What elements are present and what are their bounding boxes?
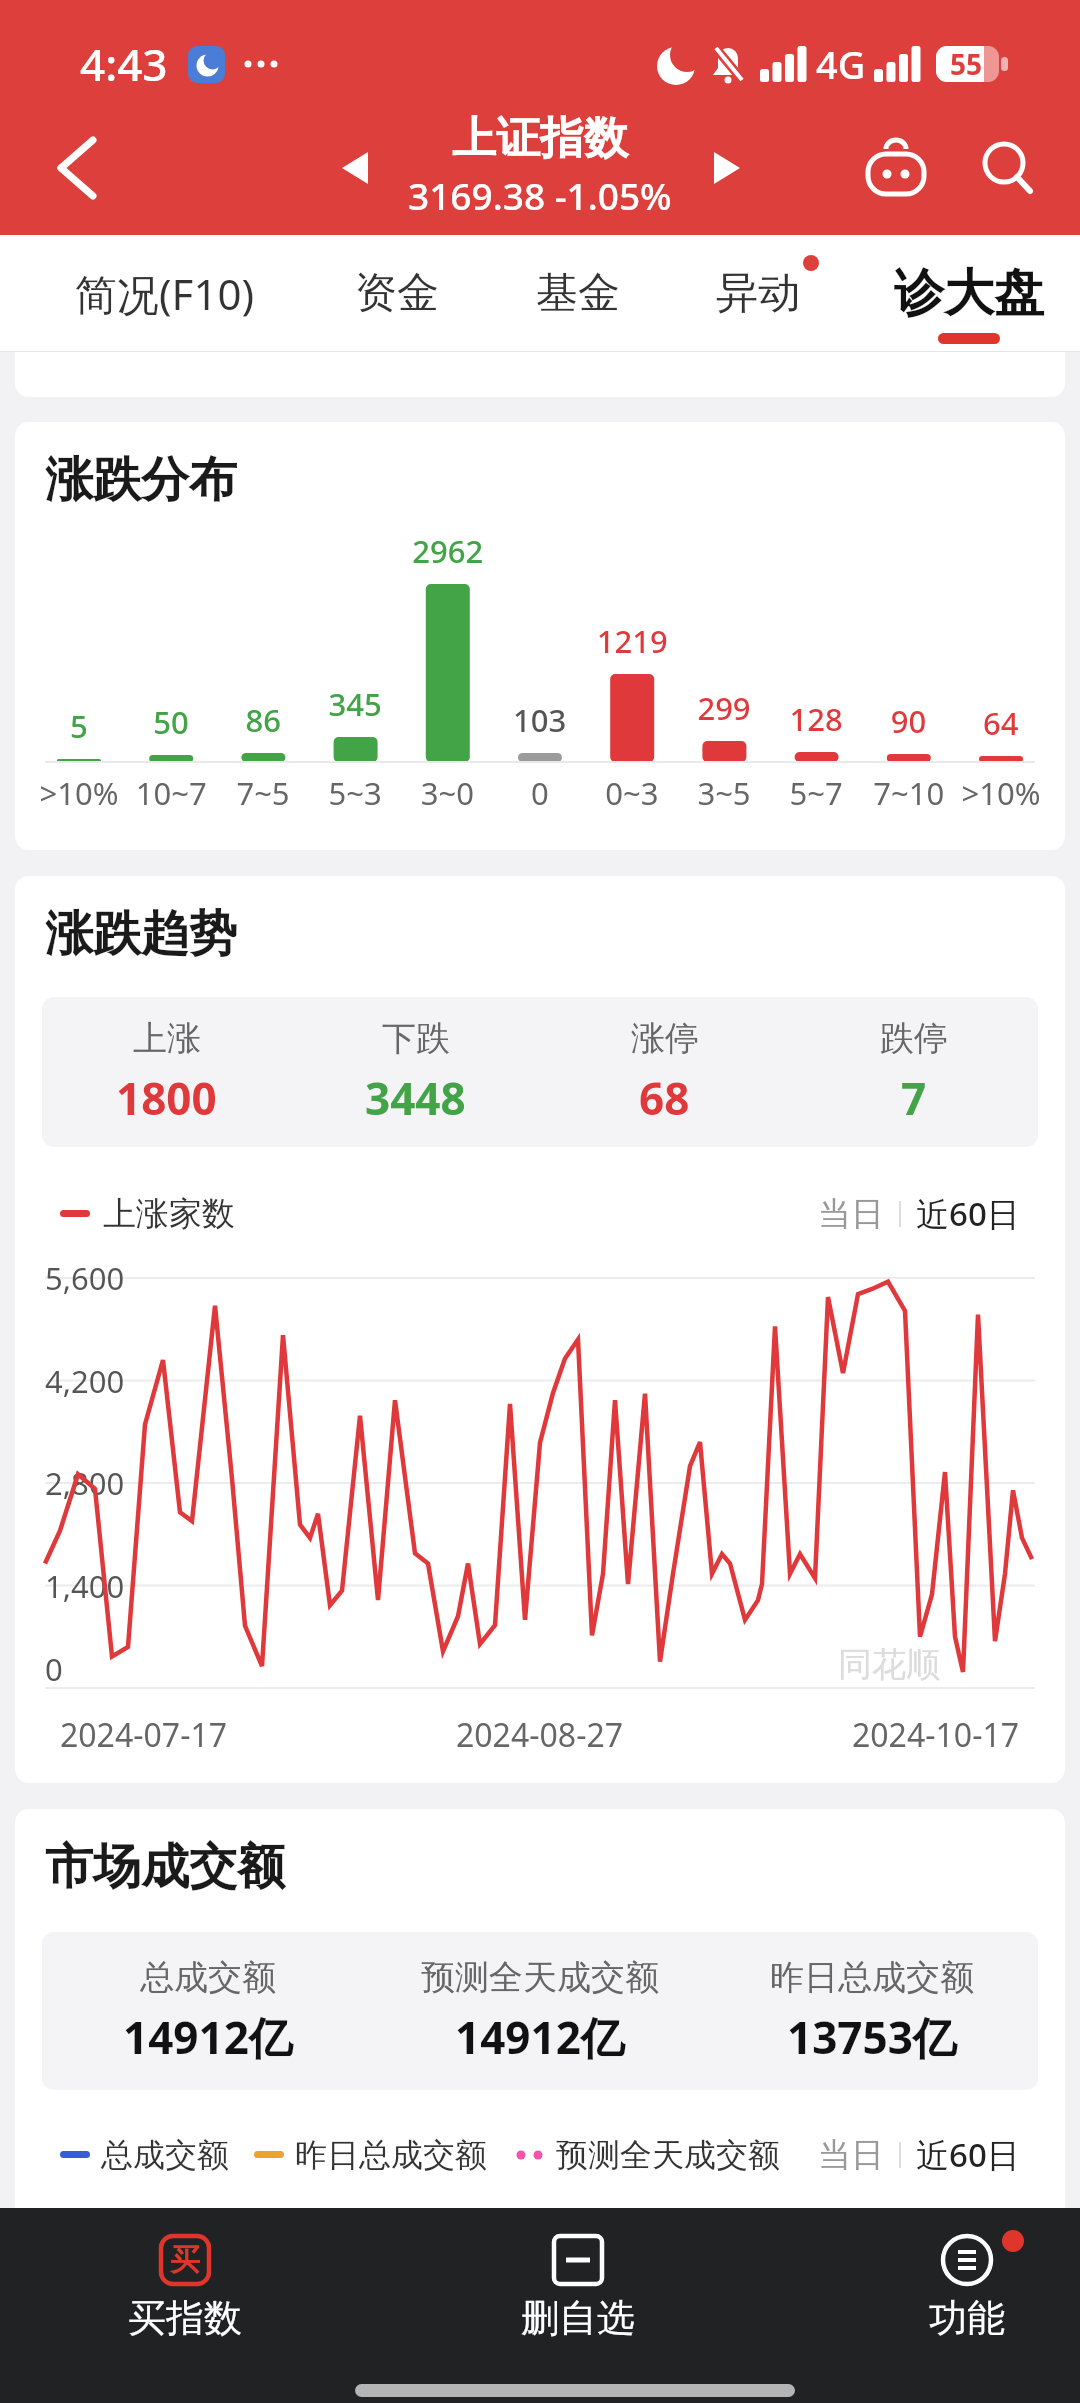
- button[interactable]: 近60日: [916, 1191, 1020, 1236]
- button[interactable]: [860, 132, 932, 204]
- button[interactable]: [714, 152, 740, 184]
- button[interactable]: 诊大盘: [894, 262, 1044, 325]
- staticText: 删自选: [521, 2294, 635, 2342]
- staticText: 涨停: [631, 1017, 699, 1060]
- staticText: 涨跌分布: [45, 450, 237, 510]
- staticText: 基金: [536, 267, 620, 320]
- button[interactable]: [42, 133, 112, 203]
- staticText: 14912亿: [123, 2007, 293, 2067]
- staticText: 7: [901, 1068, 927, 1128]
- staticText: 13753亿: [787, 2007, 957, 2067]
- staticText: 下跌: [382, 1017, 450, 1060]
- staticText: 3448: [365, 1068, 466, 1128]
- staticText: 近60日: [916, 1191, 1020, 1236]
- staticText: 资金: [355, 267, 439, 320]
- button[interactable]: 功能: [897, 2234, 1037, 2342]
- staticText: 2024-10-17: [852, 1713, 1020, 1757]
- button[interactable]: 简况(F10): [75, 265, 255, 322]
- staticText: 4:43: [80, 34, 168, 94]
- staticText: 异动: [716, 267, 800, 320]
- staticText: 1800: [116, 1068, 217, 1128]
- staticText: 功能: [929, 2294, 1005, 2342]
- staticText: 市场成交额: [45, 1837, 285, 1897]
- staticText: 近60日: [916, 2132, 1020, 2177]
- button[interactable]: 删自选: [508, 2234, 648, 2342]
- staticText: 3169.38 -1.05%: [408, 170, 672, 220]
- staticText: 预测全天成交额: [556, 2135, 780, 2175]
- staticText: 昨日总成交额: [295, 2135, 487, 2175]
- button[interactable]: [342, 152, 368, 184]
- staticText: 2024-07-17: [60, 1713, 228, 1757]
- staticText: 2024-08-27: [456, 1713, 624, 1757]
- button[interactable]: 异动: [716, 267, 800, 320]
- staticText: 总成交额: [140, 1956, 276, 1999]
- button[interactable]: 资金: [355, 267, 439, 320]
- staticText: 买指数: [128, 2294, 242, 2342]
- staticText: 昨日总成交额: [770, 1956, 974, 1999]
- staticText: 55: [950, 45, 983, 83]
- staticText: 涨跌趋势: [45, 904, 237, 964]
- button[interactable]: 近60日: [916, 2132, 1020, 2177]
- staticText: 上涨: [133, 1017, 201, 1060]
- staticText: 当日: [818, 2134, 884, 2176]
- button[interactable]: 买: [115, 2234, 255, 2342]
- button[interactable]: 基金: [536, 267, 620, 320]
- staticText: 诊大盘: [894, 262, 1044, 325]
- button[interactable]: 当日: [818, 2134, 884, 2176]
- staticText: 简况(F10): [75, 265, 255, 322]
- staticText: 上涨家数: [103, 1193, 235, 1235]
- button[interactable]: [972, 133, 1042, 203]
- staticText: 预测全天成交额: [421, 1956, 659, 1999]
- staticText: 当日: [818, 1193, 884, 1235]
- staticText: 跌停: [880, 1017, 948, 1060]
- staticText: 4G: [816, 38, 866, 90]
- staticText: 买: [170, 2241, 200, 2279]
- staticText: 总成交额: [101, 2135, 229, 2175]
- button[interactable]: 当日: [818, 1193, 884, 1235]
- staticText: 14912亿: [455, 2007, 625, 2067]
- staticText: 上证指数: [452, 111, 628, 166]
- staticText: 68: [639, 1068, 690, 1128]
